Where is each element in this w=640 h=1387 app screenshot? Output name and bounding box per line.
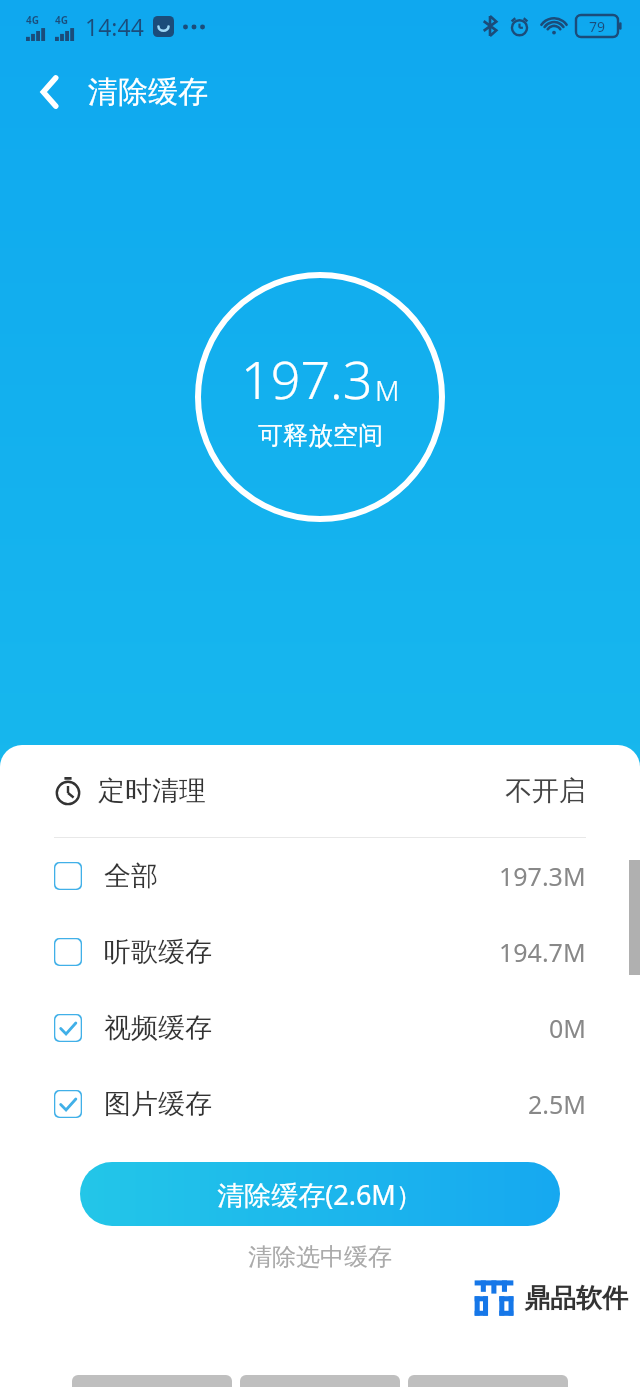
staticText: 不开启 — [505, 774, 586, 808]
staticText: M — [375, 371, 400, 409]
staticText: 194.7M — [499, 935, 586, 969]
staticText: 197.3M — [499, 859, 586, 893]
button[interactable]: 听歌缓存 — [0, 914, 640, 990]
staticText: 2.5M — [528, 1087, 586, 1121]
staticText: 清除缓存(2.6M） — [217, 1176, 423, 1213]
button[interactable]: Back — [24, 66, 76, 118]
staticText: 197.3 — [241, 343, 373, 414]
button[interactable]: 定时清理 — [0, 745, 640, 837]
staticText: 清除选中缓存 — [248, 1242, 392, 1272]
staticText: 听歌缓存 — [104, 935, 212, 969]
staticText: 14:44 — [85, 11, 144, 42]
staticText: 全部 — [104, 859, 158, 893]
button[interactable]: 全部 — [0, 838, 640, 914]
button[interactable]: 图片缓存 — [0, 1066, 640, 1142]
staticText: 4G — [26, 13, 39, 27]
staticText: 可释放空间 — [258, 420, 383, 451]
button[interactable]: 视频缓存 — [0, 990, 640, 1066]
staticText: 图片缓存 — [104, 1087, 212, 1121]
button[interactable]: 清除缓存(2.6M） — [80, 1162, 560, 1226]
staticText: 0M — [549, 1011, 586, 1045]
staticText: 清除缓存 — [88, 73, 208, 111]
staticText: 视频缓存 — [104, 1011, 212, 1045]
staticText: 79 — [589, 17, 606, 36]
staticText: 4G — [55, 13, 68, 27]
staticText: 鼎品软件 — [524, 1282, 628, 1315]
staticText: 定时清理 — [98, 774, 206, 808]
